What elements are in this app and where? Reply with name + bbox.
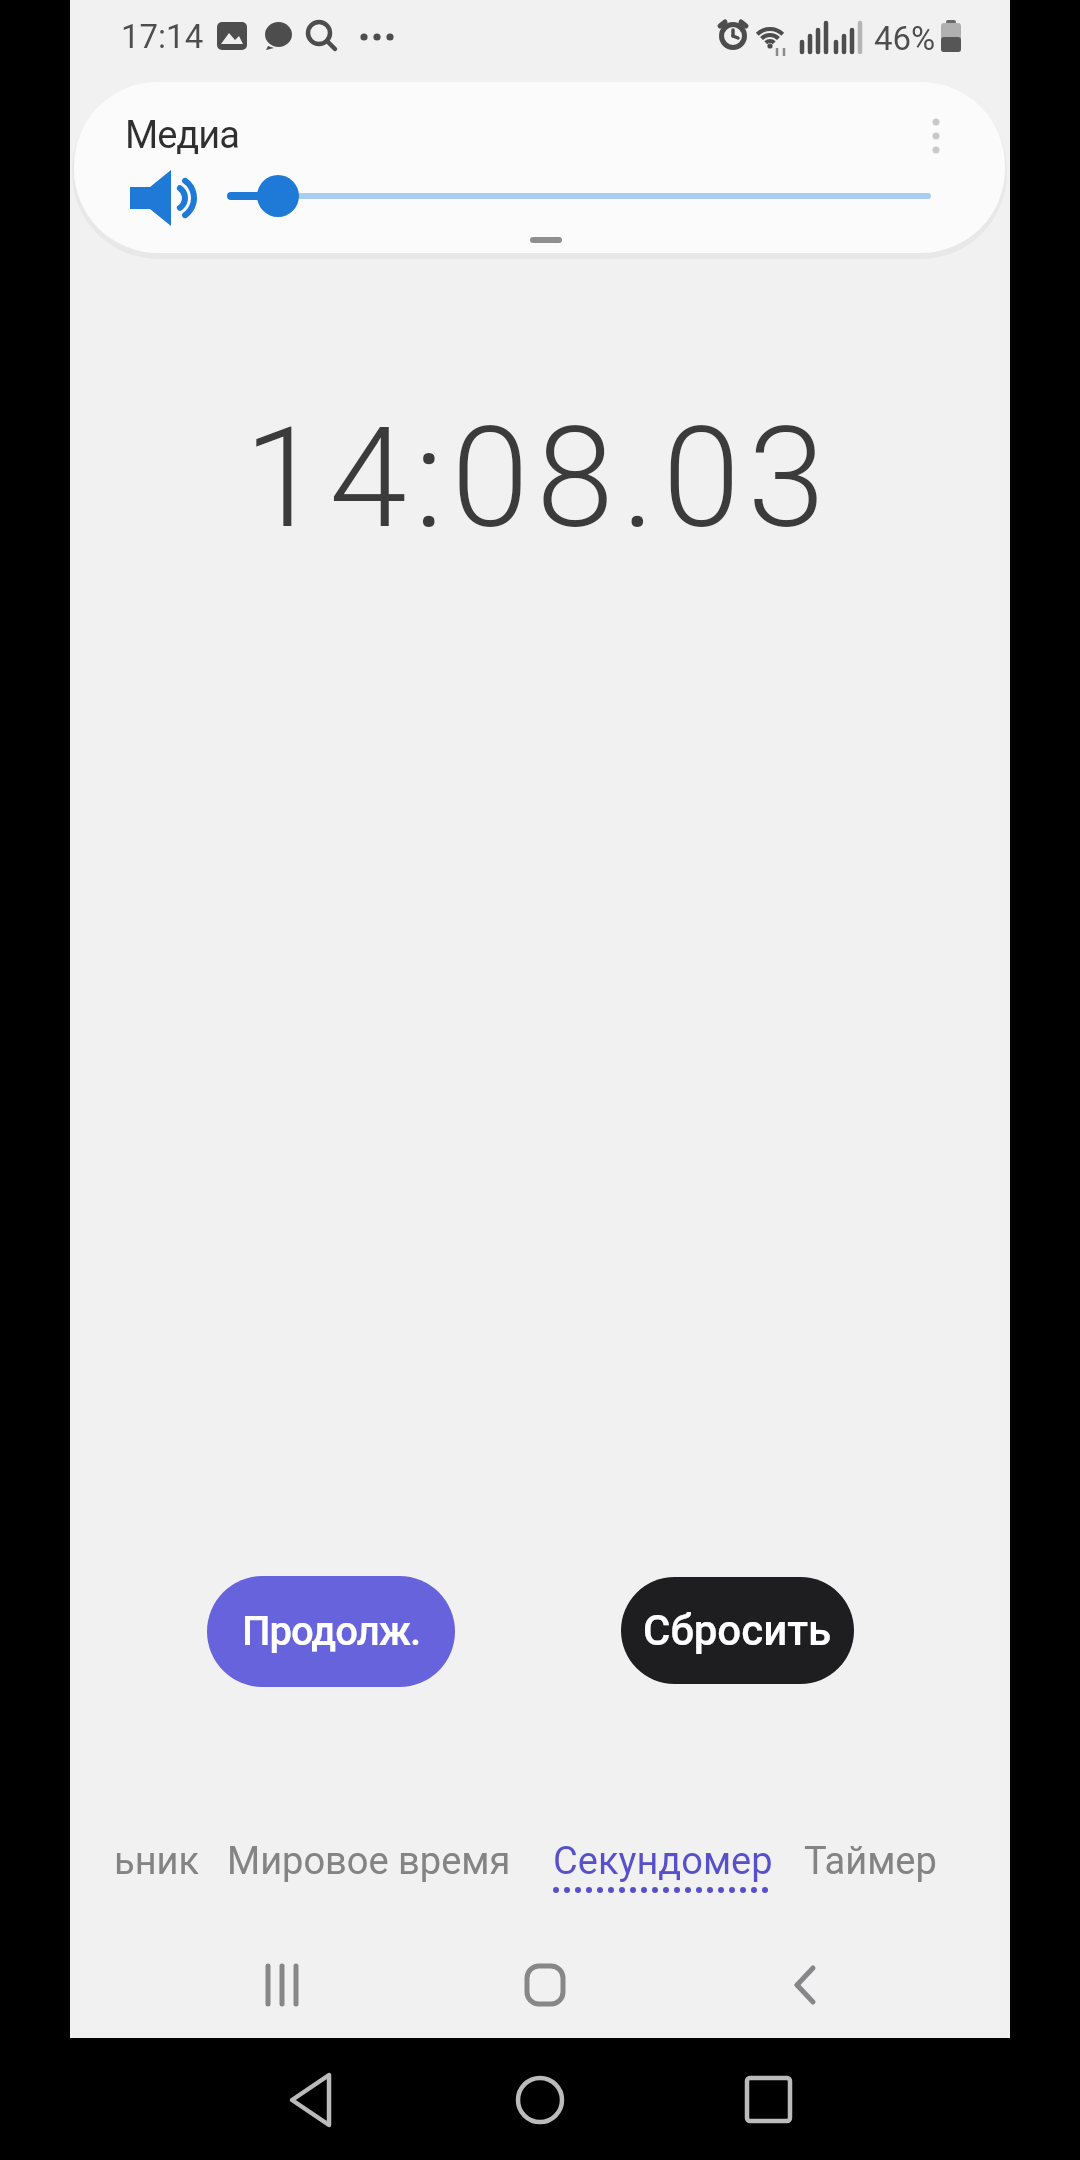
button[interactable]: Мировое время: [70, 0, 354, 45]
button[interactable]: ьник: [70, 0, 156, 45]
button[interactable]: [914, 106, 958, 166]
staticText: Таймер: [804, 1839, 937, 1884]
button[interactable]: Продолж.: [207, 1576, 455, 1687]
button[interactable]: Таймер: [70, 0, 203, 45]
staticText: 14:08.03: [244, 396, 833, 556]
staticText: 17:14: [121, 17, 204, 56]
staticText: Продолж.: [242, 1608, 421, 1655]
button[interactable]: Сбросить: [621, 1577, 854, 1684]
staticText: Сбросить: [643, 1606, 832, 1655]
button[interactable]: [730, 2070, 810, 2132]
staticText: Мировое время: [227, 1839, 511, 1884]
staticText: Секундомер: [553, 1839, 773, 1884]
button[interactable]: Секундомер: [70, 0, 290, 45]
button[interactable]: [500, 2070, 580, 2132]
button[interactable]: [507, 1946, 582, 2021]
button[interactable]: [270, 2070, 350, 2132]
staticText: ьник: [114, 1839, 200, 1884]
button[interactable]: [777, 1946, 852, 2021]
button[interactable]: [245, 1946, 320, 2021]
staticText: Медиа: [125, 113, 239, 158]
staticText: 46%: [874, 19, 936, 58]
